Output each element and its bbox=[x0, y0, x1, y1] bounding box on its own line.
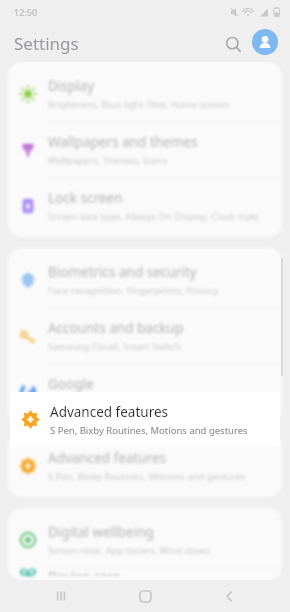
staticText: 12:50 bbox=[14, 6, 38, 18]
staticText: Samsung Cloud, Smart Switch bbox=[48, 340, 182, 353]
staticText: Biometrics and security bbox=[48, 263, 197, 281]
staticText: Settings bbox=[14, 32, 79, 55]
staticText: Brightness, Blue light filter, Home scre… bbox=[48, 98, 230, 111]
button[interactable]: Back bbox=[206, 580, 252, 612]
staticText: Accounts and backup bbox=[48, 319, 184, 337]
button[interactable]: Accounts and backup bbox=[8, 308, 282, 363]
staticText: Google settings bbox=[48, 396, 119, 409]
staticText: Lock screen bbox=[48, 189, 123, 207]
staticText: Device care bbox=[48, 568, 121, 576]
button[interactable]: Google bbox=[8, 364, 282, 419]
button[interactable]: Digital wellbeing bbox=[8, 512, 282, 567]
button[interactable]: Samsung account bbox=[252, 29, 278, 55]
button[interactable]: Device care bbox=[8, 568, 282, 576]
staticText: Wallpapers, Themes, Icons bbox=[48, 154, 168, 167]
staticText: Screen lock type, Always On Display, Clo… bbox=[48, 210, 259, 223]
staticText: Screen time, App timers, Wind down bbox=[48, 544, 210, 557]
staticText: Display bbox=[48, 77, 95, 95]
staticText: Google bbox=[48, 375, 94, 393]
staticText: Advanced features bbox=[48, 449, 167, 467]
staticText: Face recognition, Fingerprints, Privacy bbox=[48, 284, 218, 297]
staticText: S Pen, Bixby Routines, Motions and gestu… bbox=[50, 424, 248, 437]
staticText: Digital wellbeing bbox=[48, 523, 154, 541]
button[interactable]: Lock screen bbox=[8, 178, 282, 233]
button[interactable]: Advanced features bbox=[10, 392, 280, 447]
button[interactable]: Recent apps bbox=[38, 580, 84, 612]
button[interactable]: Home bbox=[122, 580, 168, 612]
staticText: Wallpapers and themes bbox=[48, 133, 198, 151]
button[interactable]: Wallpapers and themes bbox=[8, 122, 282, 177]
staticText: S Pen, Bixby Routines, Motions and gestu… bbox=[48, 470, 246, 483]
button[interactable]: Display bbox=[8, 66, 282, 121]
button[interactable]: Biometrics and security bbox=[8, 252, 282, 307]
button[interactable]: Search bbox=[219, 30, 247, 58]
staticText: Advanced features bbox=[50, 403, 169, 421]
button[interactable]: Advanced features bbox=[8, 438, 282, 493]
